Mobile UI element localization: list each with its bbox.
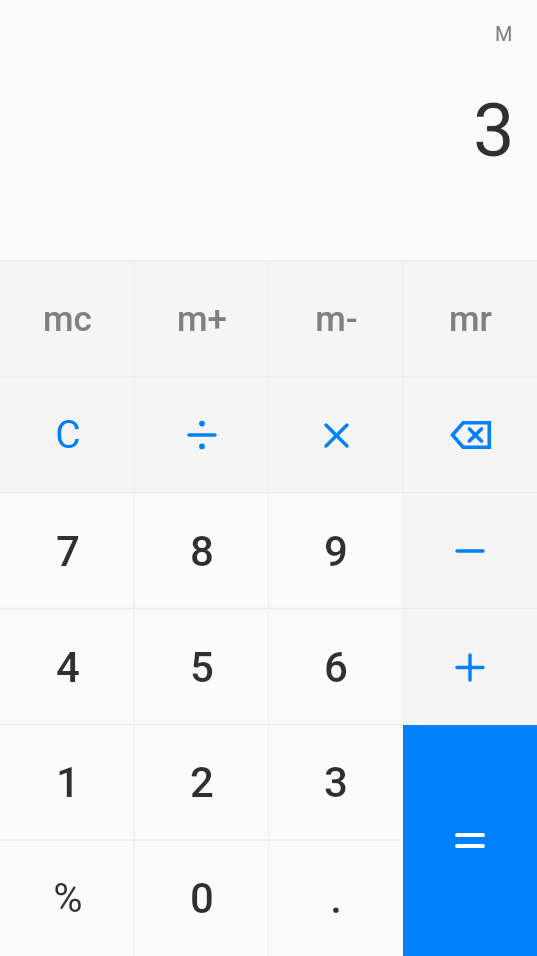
staticText: M: [495, 22, 513, 45]
button[interactable]: Backspace: [403, 377, 537, 493]
button[interactable]: 1: [0, 725, 135, 840]
staticText: 6: [324, 643, 348, 692]
button[interactable]: Multiply: [269, 377, 403, 493]
button[interactable]: Plus: [403, 609, 537, 725]
button[interactable]: mr: [403, 261, 537, 377]
staticText: 2: [190, 758, 214, 807]
staticText: 4: [56, 643, 80, 692]
staticText: 9: [324, 527, 348, 576]
staticText: .: [330, 874, 342, 923]
button[interactable]: C: [0, 377, 135, 493]
staticText: mr: [449, 299, 492, 340]
staticText: %: [53, 875, 83, 922]
staticText: 3: [473, 87, 515, 174]
staticText: 5: [190, 643, 214, 692]
button[interactable]: 2: [135, 725, 269, 840]
staticText: 7: [56, 527, 80, 576]
button[interactable]: m-: [269, 261, 403, 377]
button[interactable]: 6: [269, 609, 403, 725]
button[interactable]: %: [0, 840, 135, 956]
staticText: 0: [190, 874, 214, 923]
button[interactable]: Equals: [403, 725, 537, 956]
button[interactable]: Minus: [403, 493, 537, 609]
button[interactable]: mc: [0, 261, 135, 377]
button[interactable]: Divide: [135, 377, 269, 493]
button[interactable]: 9: [269, 493, 403, 609]
staticText: mc: [43, 299, 92, 340]
button[interactable]: 8: [135, 493, 269, 609]
button[interactable]: .: [269, 840, 403, 956]
staticText: C: [55, 412, 81, 458]
button[interactable]: 4: [0, 609, 135, 725]
button[interactable]: 3: [269, 725, 403, 840]
staticText: m-: [315, 299, 358, 340]
staticText: m+: [177, 299, 227, 340]
button[interactable]: m+: [135, 261, 269, 377]
staticText: 8: [190, 527, 214, 576]
button[interactable]: 7: [0, 493, 135, 609]
button[interactable]: 5: [135, 609, 269, 725]
staticText: 3: [324, 758, 348, 807]
button[interactable]: 0: [135, 840, 269, 956]
staticText: 1: [56, 758, 80, 807]
